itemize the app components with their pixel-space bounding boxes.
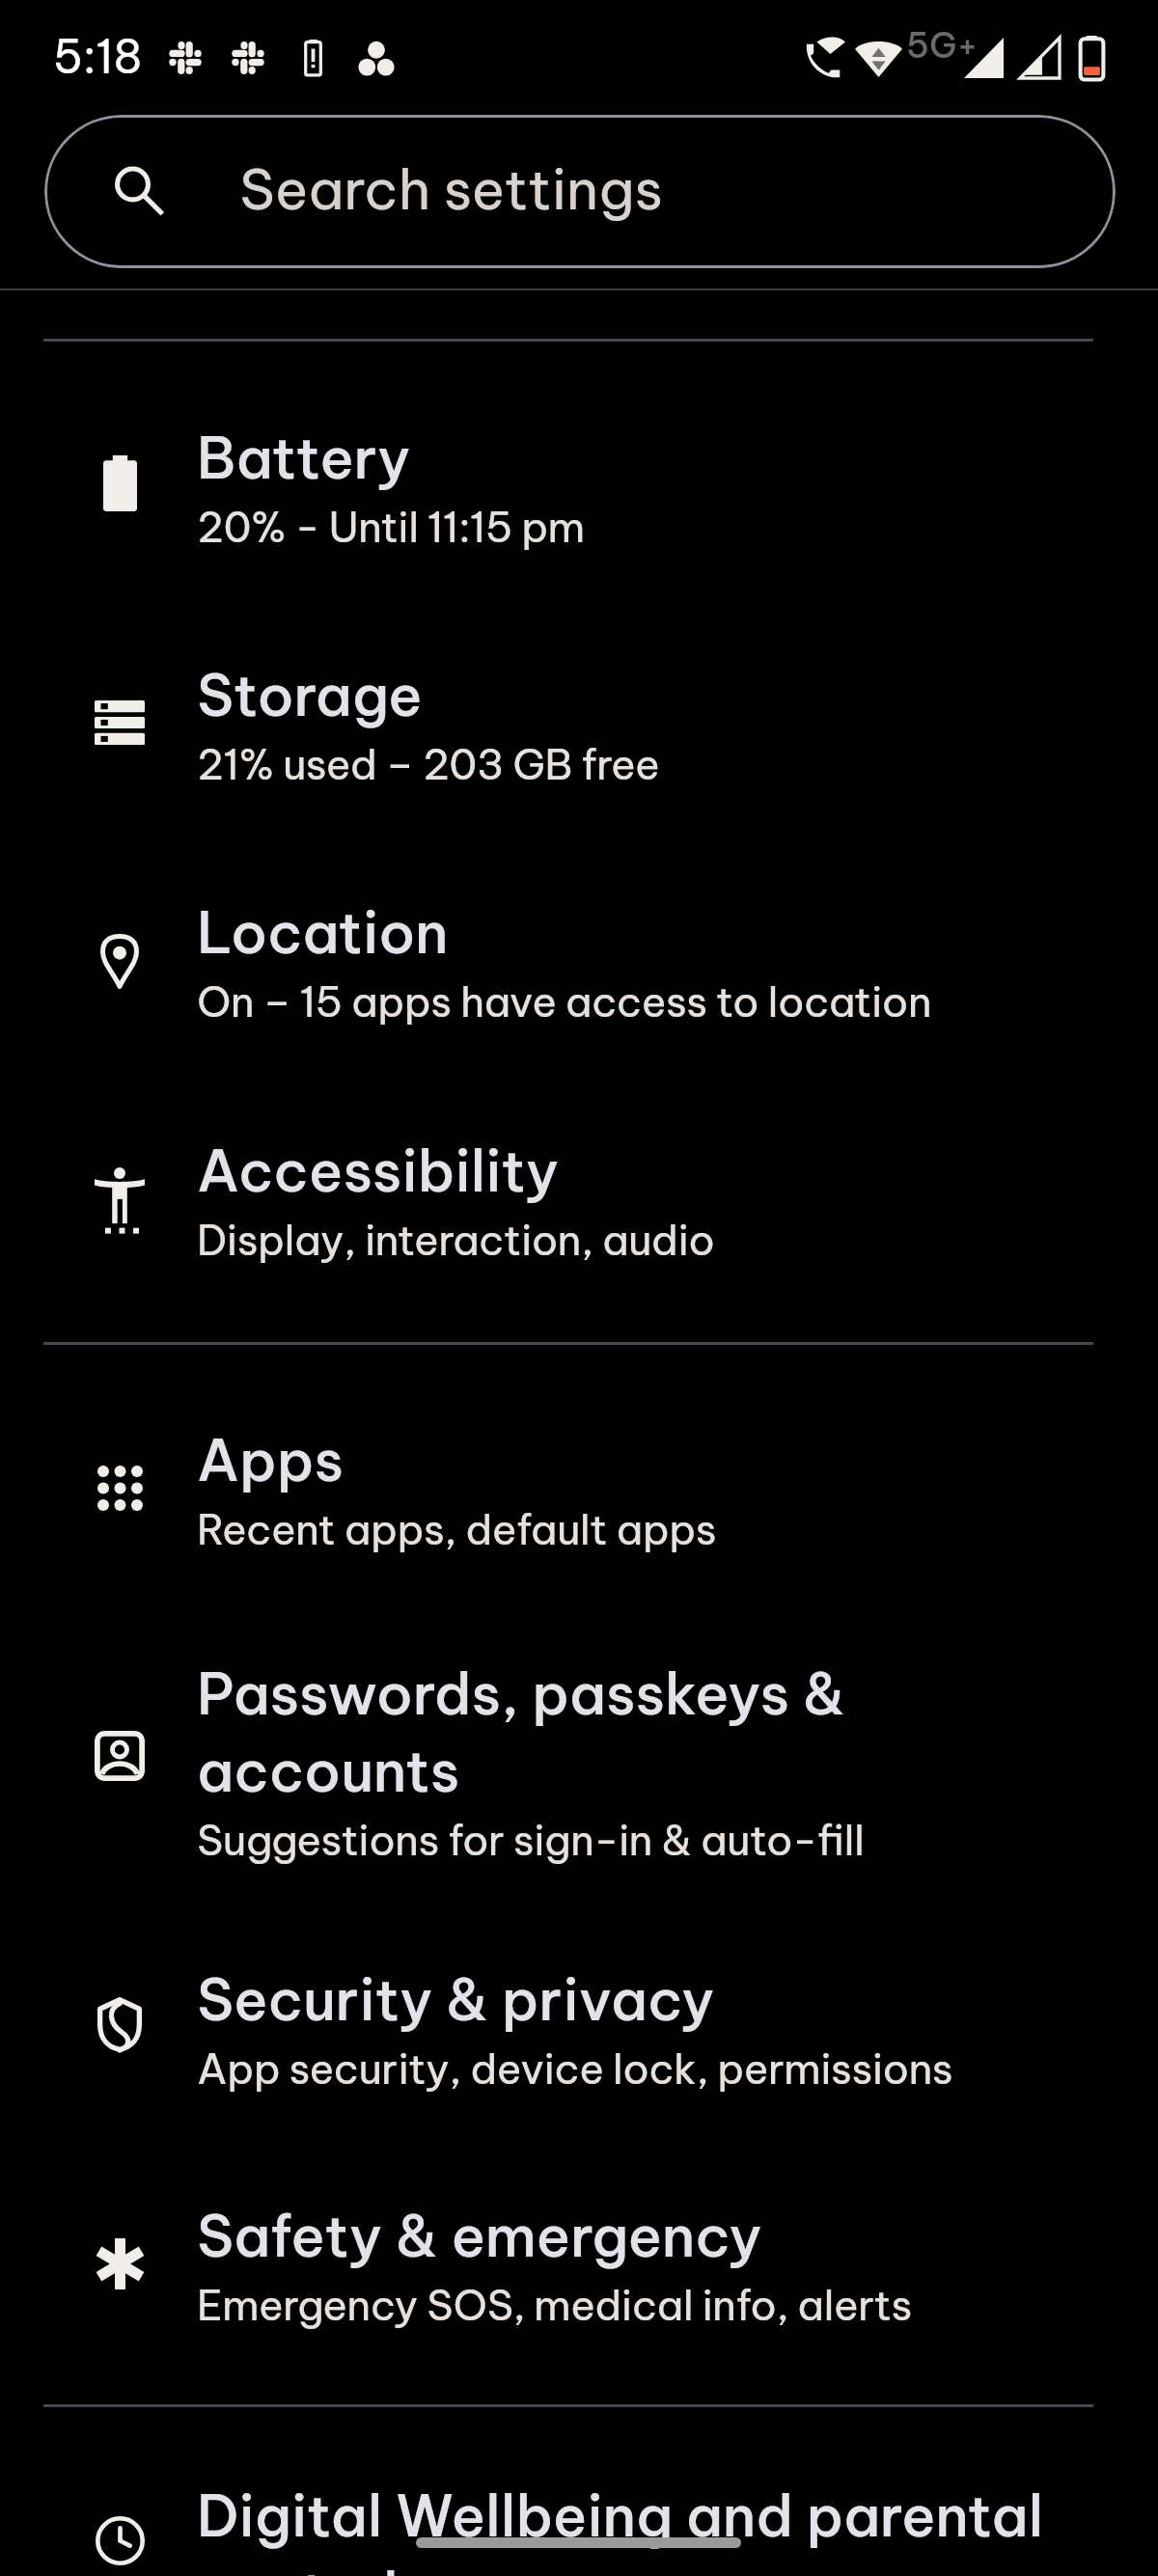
staticText: Safety & emergency <box>197 2196 762 2273</box>
staticText: 21% used – 203 GB free <box>197 738 660 790</box>
staticText: 20% - Until 11:15 pm <box>197 501 585 553</box>
button[interactable]: Search settings <box>44 115 1116 268</box>
staticText: 5G+ <box>906 23 979 68</box>
button[interactable]: Accessibility <box>0 1064 1158 1301</box>
staticText: Display, interaction, audio <box>197 1214 715 1266</box>
staticText: Emergency SOS, medical info, alerts <box>197 2279 912 2331</box>
staticText: On – 15 apps have access to location <box>197 975 932 1028</box>
button[interactable]: Digital Wellbeing and parental controls <box>0 2422 1158 2576</box>
button[interactable]: Battery <box>0 355 1158 591</box>
staticText: Location <box>197 892 449 970</box>
button[interactable]: Safety & emergency <box>0 2142 1158 2378</box>
staticText: Storage <box>197 655 423 732</box>
staticText: App security, device lock, permissions <box>197 2042 953 2095</box>
staticText: Suggestions for sign-in & auto-fill <box>197 1814 865 1866</box>
staticText: Digital Wellbeing and parental controls <box>197 2476 1044 2576</box>
staticText: Passwords, passkeys & accounts <box>197 1654 845 1808</box>
button[interactable]: Security & privacy <box>0 1905 1158 2142</box>
staticText: Recent apps, default apps <box>197 1503 717 1555</box>
button[interactable]: Apps <box>0 1360 1158 1597</box>
button[interactable]: Passwords, passkeys & accounts <box>0 1597 1158 1905</box>
button[interactable]: Storage <box>0 591 1158 828</box>
staticText: Search settings <box>239 153 664 224</box>
staticText: Accessibility <box>197 1131 560 1208</box>
staticText: Security & privacy <box>197 1959 715 2037</box>
button[interactable]: Location <box>0 828 1158 1064</box>
staticText: Battery <box>197 418 411 495</box>
staticText: 5:18 <box>53 28 143 85</box>
staticText: Apps <box>197 1420 345 1497</box>
